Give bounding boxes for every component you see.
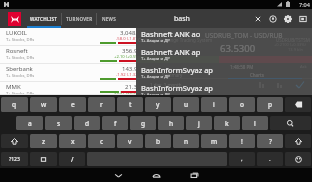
- button[interactable]: r: [88, 97, 115, 112]
- button[interactable]: Shift: [1, 134, 28, 148]
- staticText: -58.0 (-1.87%): [116, 36, 136, 42]
- button[interactable]: h: [158, 116, 184, 130]
- staticText: z: [42, 137, 46, 146]
- staticText: WATCHLIST: [30, 16, 58, 22]
- staticText: l: [254, 119, 256, 128]
- button[interactable]: v: [117, 134, 143, 148]
- button[interactable]: ?123: [1, 152, 28, 166]
- button[interactable]: Home: [149, 168, 163, 182]
- button[interactable]: BashInformSvyaz ap: [136, 64, 312, 82]
- staticText: ?: [269, 137, 272, 146]
- staticText: 13.9 bln: [288, 47, 303, 52]
- button[interactable]: o: [229, 97, 255, 112]
- staticText: Ask: [300, 64, 307, 69]
- staticText: q: [12, 100, 17, 109]
- staticText: 63.5300: [220, 42, 256, 55]
- button[interactable]: Settings: [280, 11, 295, 26]
- button[interactable]: Bashneft ANK ao: [136, 28, 312, 46]
- staticText: k: [225, 119, 229, 128]
- staticText: e: [71, 100, 75, 109]
- button[interactable]: y: [145, 97, 171, 112]
- button[interactable]: LUKOIL: [0, 28, 136, 46]
- staticText: c: [100, 137, 104, 146]
- button[interactable]: .: [257, 152, 283, 166]
- button[interactable]: /: [59, 152, 85, 166]
- button[interactable]: w: [30, 97, 57, 112]
- button[interactable]: Back: [111, 168, 125, 182]
- staticText: Rosneft: [6, 47, 28, 55]
- button[interactable]: NEWS: [97, 9, 120, 28]
- staticText: BashInformSvyaz ap: [141, 83, 213, 93]
- button[interactable]: ?: [257, 134, 283, 148]
- staticText: Bashneft ANK ao: [141, 29, 201, 39]
- button[interactable]: WATCHLIST: [27, 9, 61, 28]
- button[interactable]: Sberbank: [0, 64, 136, 82]
- button[interactable]: Search: [270, 116, 311, 130]
- button[interactable]: Backspace: [285, 97, 311, 112]
- button[interactable]: d: [74, 116, 100, 130]
- button[interactable]: BashInformSvyaz ap: [136, 82, 312, 95]
- button[interactable]: !: [229, 134, 255, 148]
- button[interactable]: s: [45, 116, 72, 130]
- staticText: T+ Акции и ДР: [141, 74, 170, 80]
- staticText: u: [184, 100, 189, 109]
- button[interactable]: t: [117, 97, 143, 112]
- staticText: 3,048.0: [120, 29, 136, 37]
- staticText: LUKOIL: [6, 29, 27, 37]
- button[interactable]: k: [214, 116, 240, 130]
- button[interactable]: TURNOVER: [62, 9, 96, 28]
- staticText: 7:04: [299, 1, 310, 8]
- button[interactable]: Emoji: [285, 152, 311, 166]
- staticText: T+ Акции и ДР: [141, 92, 170, 98]
- button[interactable]: Close: [250, 11, 265, 26]
- button[interactable]: f: [102, 116, 128, 130]
- button[interactable]: e: [59, 97, 86, 112]
- staticText: T+ Stocks, DRs: [6, 91, 35, 95]
- staticText: 1:48:58 PM: [230, 64, 254, 70]
- button[interactable]: m: [201, 134, 227, 148]
- button[interactable]: ,: [229, 152, 255, 166]
- staticText: NEWS: [102, 16, 116, 22]
- button[interactable]: Bashneft ANK ap: [136, 46, 312, 64]
- button[interactable]: q: [1, 97, 28, 112]
- staticText: g: [141, 119, 146, 128]
- button[interactable]: x: [59, 134, 86, 148]
- button[interactable]: Recents: [187, 168, 201, 182]
- staticText: 143.93: [122, 65, 136, 73]
- staticText: Summary: [162, 72, 183, 78]
- button[interactable]: i: [201, 97, 227, 112]
- staticText: T+ Stocks, DRs: [6, 73, 35, 79]
- button[interactable]: More options: [295, 11, 310, 26]
- button[interactable]: b: [145, 134, 171, 148]
- button[interactable]: j: [186, 116, 212, 130]
- staticText: 356.90: [122, 47, 136, 55]
- staticText: ?123: [9, 156, 20, 163]
- staticText: Sberbank: [6, 65, 33, 73]
- button[interactable]: Input method: [30, 152, 57, 166]
- staticText: n: [184, 137, 189, 146]
- button[interactable]: Rosneft: [0, 46, 136, 64]
- button[interactable]: g: [130, 116, 156, 130]
- button[interactable]: Voice search: [265, 11, 280, 26]
- staticText: b: [156, 137, 161, 146]
- button[interactable]: c: [88, 134, 115, 148]
- staticText: T+ Акции и ДР: [141, 38, 170, 44]
- button[interactable]: App logo: [8, 12, 21, 26]
- staticText: 21.38: [125, 83, 136, 91]
- button[interactable]: a: [16, 116, 43, 130]
- button[interactable]: p: [257, 97, 283, 112]
- staticText: m: [211, 137, 218, 146]
- button[interactable]: z: [30, 134, 57, 148]
- staticText: t: [129, 100, 132, 109]
- staticText: !: [241, 137, 243, 146]
- button[interactable]: Shift: [285, 134, 311, 148]
- staticText: ,: [241, 155, 243, 163]
- staticText: a: [28, 119, 32, 128]
- button[interactable]: n: [173, 134, 199, 148]
- button[interactable]: u: [173, 97, 199, 112]
- staticText: .: [269, 155, 271, 163]
- button[interactable]: MMK: [0, 82, 136, 95]
- button[interactable]: l: [242, 116, 268, 130]
